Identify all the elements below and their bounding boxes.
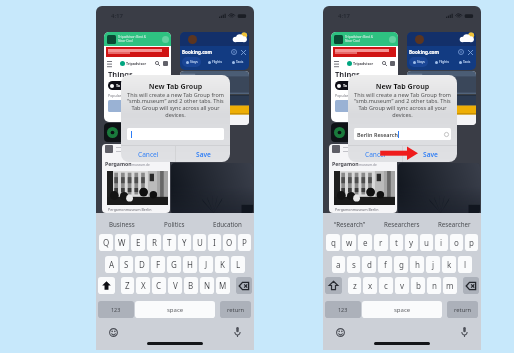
button[interactable]: F bbox=[151, 256, 165, 273]
button[interactable]: v bbox=[395, 277, 409, 294]
button[interactable]: H bbox=[183, 256, 197, 273]
button[interactable]: Save bbox=[403, 146, 457, 162]
button[interactable]: X bbox=[136, 277, 150, 294]
button[interactable] bbox=[398, 163, 480, 214]
button[interactable]: I bbox=[208, 234, 221, 251]
button[interactable]: f bbox=[378, 256, 392, 273]
button[interactable]: Emoji keyboard bbox=[336, 328, 345, 337]
button[interactable]: P bbox=[238, 234, 251, 251]
button[interactable]: Berlin Research bbox=[354, 128, 451, 140]
button[interactable]: A bbox=[105, 256, 118, 273]
button[interactable]: D bbox=[135, 256, 149, 273]
button[interactable]: Dictation bbox=[461, 327, 468, 337]
button[interactable]: G bbox=[167, 256, 181, 273]
button[interactable]: E bbox=[131, 234, 145, 251]
button[interactable]: K bbox=[215, 256, 229, 273]
button[interactable]: o bbox=[450, 234, 463, 251]
button[interactable]: V bbox=[168, 277, 182, 294]
button[interactable]: Taxis bbox=[228, 57, 247, 67]
button[interactable]: Y bbox=[178, 234, 191, 251]
button[interactable]: T bbox=[163, 234, 176, 251]
button[interactable]: U bbox=[193, 234, 206, 251]
button[interactable]: Z bbox=[121, 277, 134, 294]
button[interactable]: Backspace bbox=[236, 277, 252, 294]
button[interactable]: j bbox=[426, 256, 440, 273]
button[interactable]: Stays bbox=[182, 57, 201, 67]
button[interactable]: y bbox=[405, 234, 418, 251]
button[interactable]: return bbox=[447, 301, 478, 318]
button[interactable]: l bbox=[458, 256, 472, 273]
button[interactable]: Cancel bbox=[348, 146, 402, 162]
button[interactable]: Flights bbox=[205, 57, 224, 67]
button[interactable] bbox=[331, 123, 399, 142]
button[interactable]: Close tab bbox=[162, 36, 169, 43]
button[interactable]: S bbox=[120, 256, 133, 273]
button[interactable]: d bbox=[362, 256, 376, 273]
button[interactable]: b bbox=[411, 277, 425, 294]
button[interactable] bbox=[171, 163, 253, 214]
button[interactable]: Dictation bbox=[234, 327, 241, 337]
button[interactable]: u bbox=[420, 234, 433, 251]
button[interactable]: M bbox=[216, 277, 230, 294]
button[interactable]: a bbox=[332, 256, 345, 273]
button[interactable]: Politics bbox=[148, 213, 201, 235]
button[interactable]: r bbox=[374, 234, 388, 251]
button[interactable]: J bbox=[199, 256, 213, 273]
button[interactable]: Tripadvisor: Best & bbox=[104, 32, 171, 122]
button[interactable]: Cancel bbox=[121, 146, 175, 162]
button[interactable]: Tripadvisor: Best & bbox=[331, 32, 398, 122]
button[interactable]: 123 bbox=[98, 301, 134, 318]
button[interactable]: t bbox=[390, 234, 403, 251]
button[interactable]: To bbox=[108, 81, 137, 90]
button[interactable]: Pergamon bbox=[102, 144, 170, 213]
button[interactable]: Emoji keyboard bbox=[109, 328, 118, 337]
button[interactable]: Booking.com bbox=[180, 32, 249, 70]
button[interactable] bbox=[127, 128, 224, 140]
button[interactable]: N bbox=[200, 277, 214, 294]
button[interactable]: z bbox=[348, 277, 361, 294]
button[interactable]: c bbox=[379, 277, 393, 294]
button[interactable]: Stays bbox=[409, 57, 428, 67]
button[interactable]: “Research” bbox=[323, 213, 375, 235]
button[interactable]: L bbox=[231, 256, 245, 273]
button[interactable]: h bbox=[410, 256, 424, 273]
button[interactable]: w bbox=[342, 234, 356, 251]
button[interactable]: Booking.com bbox=[407, 32, 476, 70]
button[interactable]: Save bbox=[176, 146, 230, 162]
button[interactable]: k bbox=[442, 256, 456, 273]
button[interactable] bbox=[180, 71, 249, 125]
button[interactable]: g bbox=[394, 256, 408, 273]
button[interactable]: C bbox=[152, 277, 166, 294]
button[interactable]: m bbox=[443, 277, 457, 294]
button[interactable]: Business bbox=[96, 213, 148, 235]
button[interactable]: Taxis bbox=[455, 57, 474, 67]
button[interactable]: Q bbox=[99, 234, 113, 251]
button[interactable] bbox=[104, 123, 172, 142]
button[interactable]: e bbox=[358, 234, 372, 251]
button[interactable]: x bbox=[363, 277, 377, 294]
button[interactable]: Shift bbox=[98, 277, 115, 294]
button[interactable]: Close tab bbox=[389, 36, 396, 43]
button[interactable]: Shift bbox=[325, 277, 342, 294]
button[interactable]: p bbox=[465, 234, 478, 251]
button[interactable]: Pergamon bbox=[329, 144, 397, 213]
button[interactable]: return bbox=[220, 301, 251, 318]
button[interactable]: space bbox=[135, 301, 215, 318]
button[interactable]: n bbox=[427, 277, 441, 294]
button[interactable]: space bbox=[362, 301, 442, 318]
button[interactable]: s bbox=[347, 256, 360, 273]
button[interactable]: To bbox=[335, 81, 364, 90]
button[interactable]: R bbox=[147, 234, 161, 251]
button[interactable]: 123 bbox=[325, 301, 361, 318]
button[interactable]: i bbox=[435, 234, 448, 251]
button[interactable]: B bbox=[184, 277, 198, 294]
button[interactable]: Backspace bbox=[463, 277, 479, 294]
button[interactable]: O bbox=[223, 234, 236, 251]
button[interactable]: Researchers bbox=[375, 213, 428, 235]
button[interactable]: q bbox=[326, 234, 340, 251]
button[interactable] bbox=[407, 71, 476, 125]
button[interactable]: Education bbox=[201, 213, 254, 235]
button[interactable]: W bbox=[115, 234, 129, 251]
button[interactable]: Flights bbox=[432, 57, 451, 67]
button[interactable]: Researcher bbox=[428, 213, 481, 235]
